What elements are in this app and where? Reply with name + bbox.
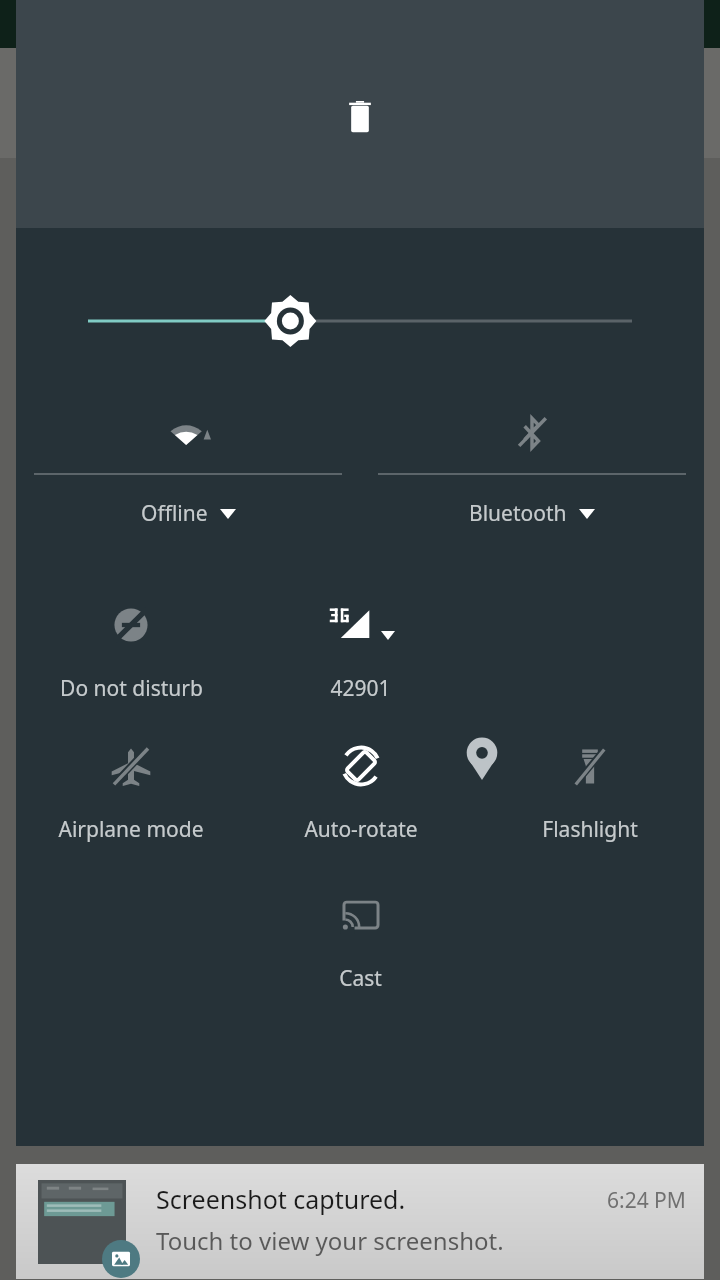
staticText: Offline <box>141 499 208 528</box>
button[interactable]: Auto-rotate <box>246 737 475 844</box>
button[interactable]: Flashlight <box>475 737 704 844</box>
staticText: Auto-rotate <box>304 815 418 844</box>
staticText: Bluetooth <box>469 499 567 528</box>
staticText: Do not disturb <box>60 674 203 703</box>
staticText: Airplane mode <box>58 815 204 844</box>
button[interactable]: 42901 <box>246 596 475 703</box>
button[interactable]: Cast <box>246 886 475 993</box>
button[interactable]: Offline <box>16 404 360 528</box>
button[interactable]: Bluetooth <box>360 404 704 528</box>
button[interactable]: Do not disturb <box>16 596 246 703</box>
button[interactable]: Remove <box>328 86 392 150</box>
button[interactable]: Screenshot captured. <box>16 1164 704 1279</box>
staticText: Cast <box>339 964 382 993</box>
staticText: 42901 <box>330 674 391 703</box>
staticText: Touch to view your screenshot. <box>156 1224 504 1257</box>
staticText: Screenshot captured. <box>156 1182 406 1216</box>
staticText: 6:24 PM <box>607 1186 686 1215</box>
button[interactable]: Brightness <box>16 290 704 352</box>
button[interactable]: Airplane mode <box>16 737 246 844</box>
staticText: Flashlight <box>542 815 638 844</box>
